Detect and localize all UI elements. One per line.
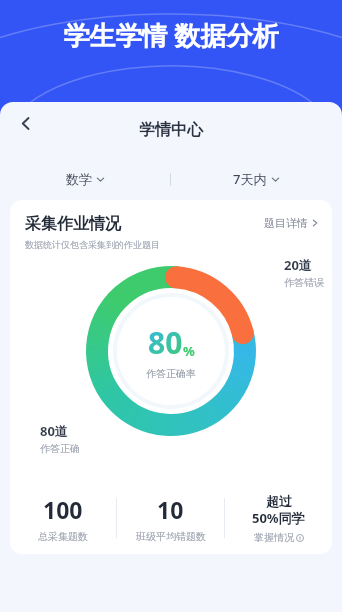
staticText: 100 [43, 494, 83, 525]
staticText: 学情中心 [139, 120, 203, 140]
staticText: 学生学情 数据分析 [0, 17, 342, 53]
staticText: 10 [157, 494, 184, 525]
staticText: 7天内 [233, 170, 267, 188]
button[interactable]: 数学 [58, 165, 113, 193]
staticText: 数学 [66, 171, 92, 187]
staticText: 作答错误 [284, 276, 324, 289]
button[interactable]: 题目详情 [264, 214, 319, 230]
staticText: 采集作业情况 [25, 214, 121, 234]
staticText: 题目详情 [264, 216, 308, 230]
staticText: 50%同学 [252, 509, 305, 527]
staticText: 班级平均错题数 [136, 530, 206, 543]
staticText: 超过 [266, 493, 292, 509]
staticText: 数据统计仅包含采集到的作业题目 [25, 239, 160, 250]
staticText: 80道 [40, 422, 68, 440]
staticText: 掌握情况 [254, 531, 294, 544]
button[interactable]: Back [4, 102, 46, 144]
button[interactable]: 超过 [225, 493, 332, 544]
staticText: % [183, 342, 195, 360]
button[interactable]: 10 [117, 494, 224, 543]
staticText: 作答正确 [40, 442, 80, 455]
staticText: 20道 [284, 256, 312, 274]
staticText: 总采集题数 [38, 530, 88, 543]
button[interactable]: 100 [10, 494, 116, 543]
staticText: 80 [148, 322, 183, 363]
button[interactable]: 7天内 [225, 164, 288, 194]
staticText: 作答正确率 [146, 367, 196, 380]
